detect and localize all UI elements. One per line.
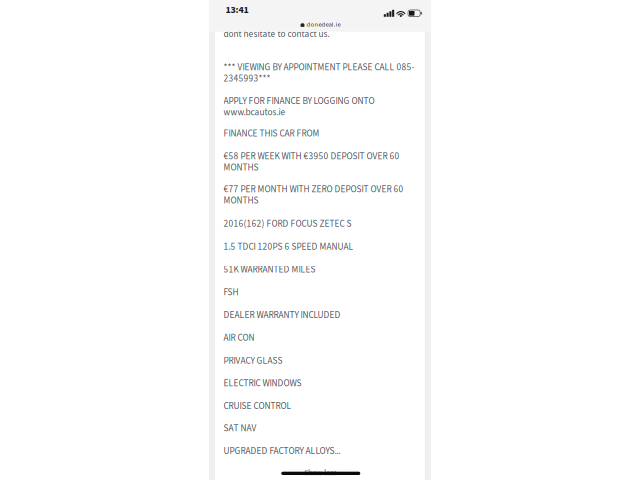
staticText: DEALER WARRANTY INCLUDED [223,308,340,322]
staticText: AIR CON [223,331,254,344]
staticText: donedeal.ie [306,20,340,29]
staticText: *** VIEWING BY APPOINTMENT PLEASE CALL 0… [223,61,414,74]
staticText: CRUISE CONTROL [223,399,291,413]
button[interactable]: Show less [209,467,431,478]
staticText: 2345993*** [223,72,270,85]
staticText: MONTHS [223,194,258,207]
staticText: 13:41 [225,3,248,17]
staticText: 1.5 TDCI 120PS 6 SPEED MANUAL [223,240,353,253]
staticText: PRIVACY GLASS [223,354,282,367]
staticText: APPLY FOR FINANCE BY LOGGING ONTO [223,94,374,108]
staticText: FINANCE THIS CAR FROM [223,127,319,140]
staticText: 2016(162) FORD FOCUS ZETEC S [223,217,351,230]
staticText: SAT NAV [223,422,256,435]
staticText: MONTHS [223,161,258,174]
staticText: UPGRADED FACTORY ALLOYS... [223,444,340,458]
staticText: Show less [304,467,336,478]
staticText: ELECTRIC WINDOWS [223,377,301,390]
staticText: €77 PER MONTH WITH ZERO DEPOSIT OVER 60 [223,183,403,196]
staticText: dont hesitate to contact us. [223,28,329,41]
staticText: FSH [223,286,238,299]
staticText: www.bcautos.ie [223,106,285,119]
staticText: 51K WARRANTED MILES [223,263,315,276]
staticText: €58 PER WEEK WITH €3950 DEPOSIT OVER 60 [223,150,399,163]
